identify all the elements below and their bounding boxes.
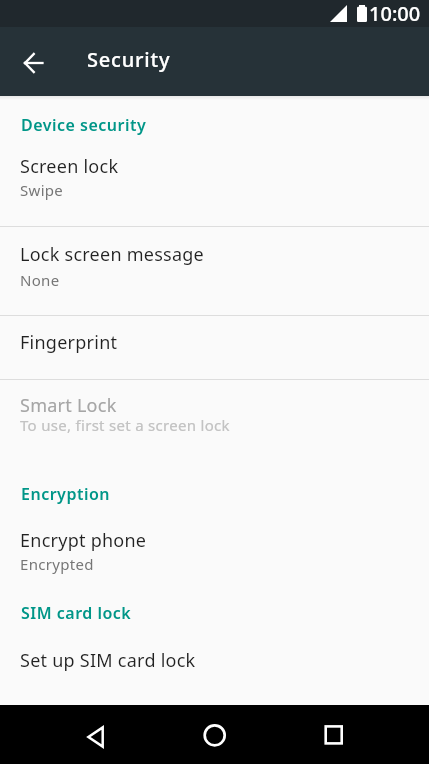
button[interactable] [75, 714, 115, 754]
staticText: Encrypted [20, 554, 94, 574]
button[interactable]: Smart Lock [0, 380, 429, 465]
button[interactable]: Screen lock [0, 133, 429, 226]
staticText: Set up SIM card lock [20, 648, 196, 673]
button[interactable] [13, 41, 55, 83]
button[interactable]: Lock screen message [0, 227, 429, 315]
staticText: SIM card lock [21, 602, 132, 624]
staticText: Smart Lock [20, 393, 117, 418]
button[interactable]: Fingerprint [0, 316, 429, 379]
staticText: Swipe [20, 180, 64, 200]
button[interactable]: Encrypt phone [0, 518, 429, 588]
staticText: Fingerprint [20, 330, 118, 355]
staticText: None [20, 270, 60, 290]
staticText: Lock screen message [20, 242, 204, 267]
staticText: Encryption [21, 483, 111, 505]
staticText: 10:00 [369, 0, 421, 27]
button[interactable]: Set up SIM card lock [0, 636, 429, 696]
staticText: Security [87, 46, 171, 73]
staticText: Encrypt phone [20, 528, 147, 553]
button[interactable] [316, 714, 356, 754]
button[interactable] [195, 714, 235, 754]
staticText: Device security [21, 114, 147, 136]
staticText: To use, first set a screen lock [20, 415, 230, 435]
staticText: Screen lock [20, 154, 119, 179]
